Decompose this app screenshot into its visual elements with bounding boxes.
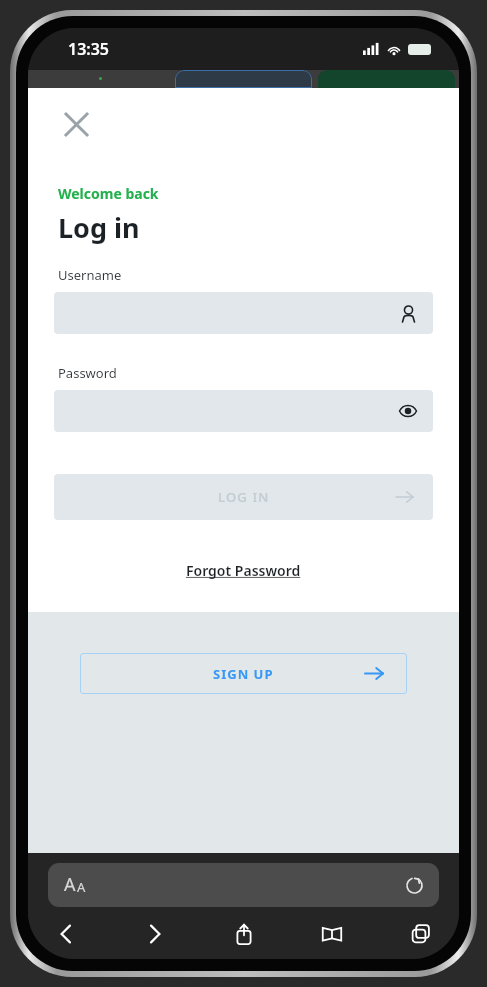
staticText: 13:35: [68, 38, 110, 60]
staticText: LOG IN: [218, 488, 270, 506]
staticText: SIGN UP: [213, 665, 274, 683]
button[interactable]: Forgot Password: [28, 561, 459, 580]
staticText: Password: [58, 364, 117, 382]
button[interactable]: Close: [56, 104, 96, 144]
staticText: Welcome back: [58, 184, 159, 203]
staticText: Forgot Password: [186, 561, 301, 580]
button[interactable]: Reload: [401, 872, 427, 898]
button[interactable]: SIGN UP: [80, 653, 407, 694]
staticText: Username: [58, 266, 122, 284]
button[interactable]: Forward: [135, 915, 175, 953]
button[interactable]: Share: [224, 915, 264, 953]
button[interactable]: Back: [46, 915, 86, 953]
staticText: Log in: [58, 209, 140, 246]
button[interactable]: Address bar: [48, 863, 439, 907]
button[interactable]: Bookmarks: [312, 915, 352, 953]
button[interactable]: Password field: [54, 390, 433, 432]
button[interactable]: Username field: [54, 292, 433, 334]
button[interactable]: LOG IN: [54, 474, 433, 520]
staticText: A: [77, 878, 86, 896]
button[interactable]: Tabs: [401, 915, 441, 953]
staticText: A: [64, 872, 76, 897]
